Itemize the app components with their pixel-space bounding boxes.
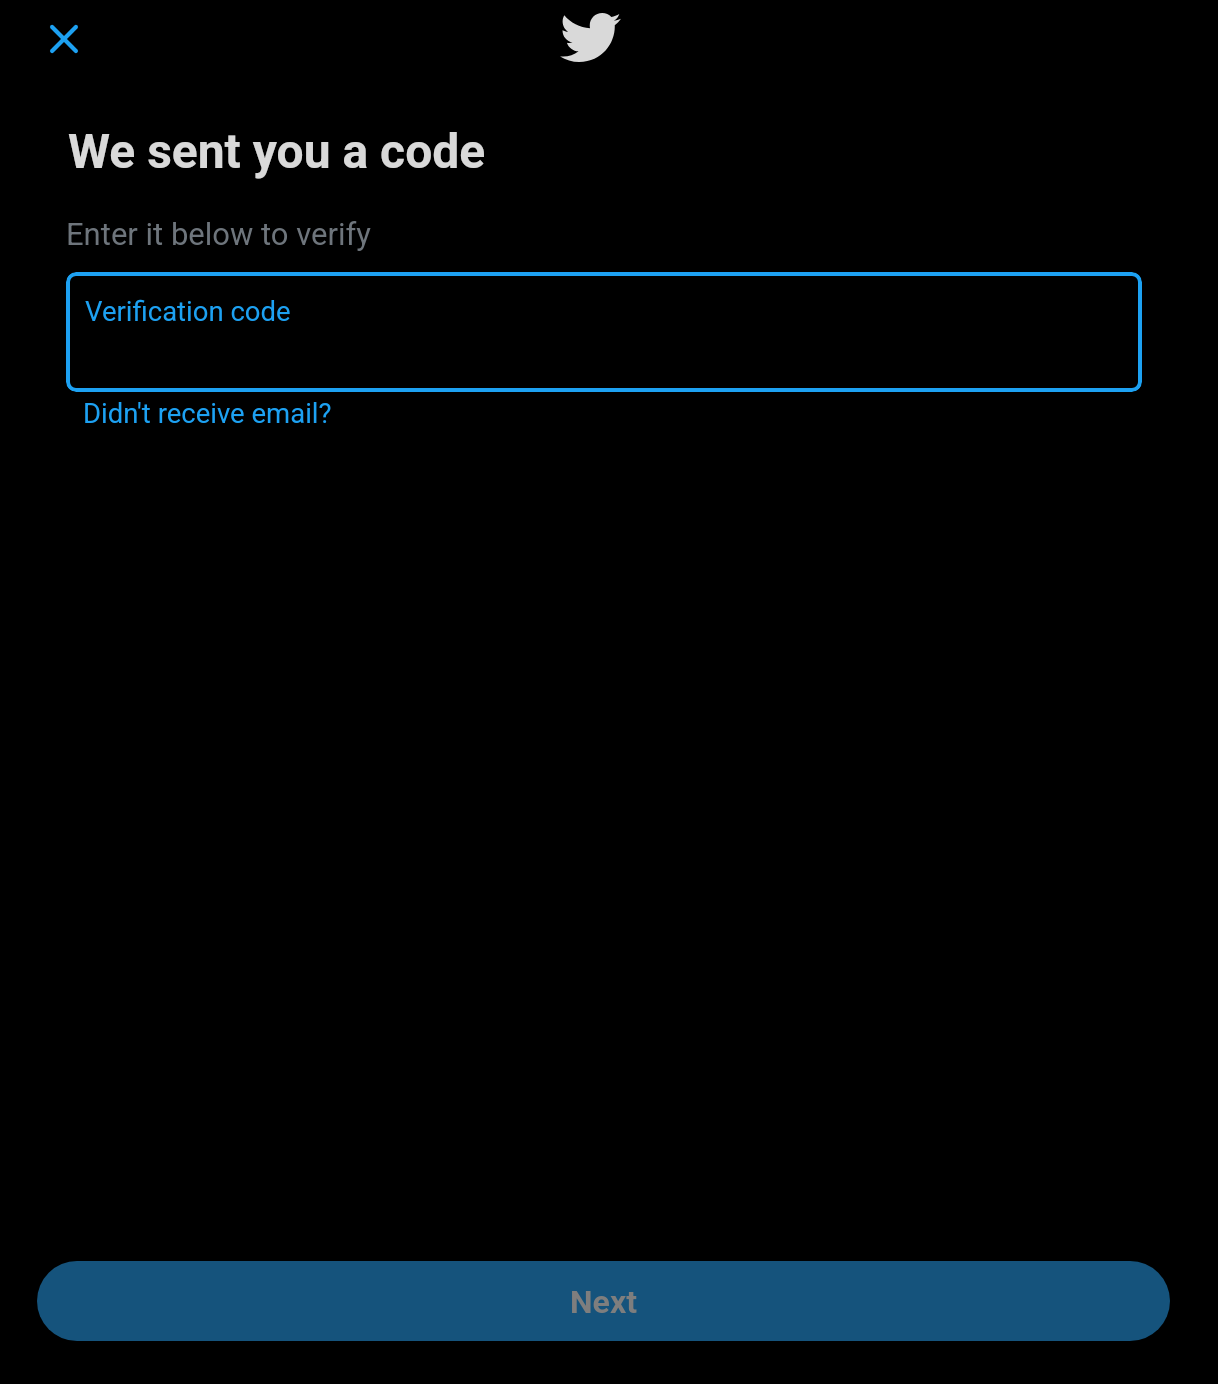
staticText: Enter it below to verify	[66, 216, 371, 252]
button[interactable]: Didn't receive email?	[71, 393, 344, 433]
staticText: Verification code	[85, 295, 291, 327]
button[interactable]: Verification code	[66, 272, 1142, 392]
other: Twitter	[560, 13, 621, 62]
staticText: Next	[570, 1283, 637, 1321]
staticText: Didn't receive email?	[83, 397, 332, 429]
button[interactable]: Close	[32, 7, 96, 71]
staticText: We sent you a code	[68, 123, 486, 179]
button[interactable]: Next	[37, 1261, 1170, 1341]
